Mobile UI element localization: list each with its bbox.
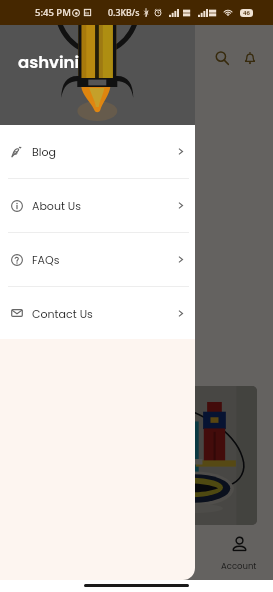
button[interactable]: Contact Us: [0, 287, 195, 339]
button[interactable]: Account: [205, 522, 273, 580]
staticText: Blog: [32, 144, 56, 159]
staticText: ashvini: [18, 51, 80, 74]
staticText: 5:45 PM: [35, 6, 71, 19]
staticText: 0.3KB/s: [108, 7, 140, 19]
button[interactable]: Notifications: [236, 44, 264, 72]
button[interactable]: Search: [208, 44, 236, 72]
staticText: Contact Us: [32, 306, 93, 321]
button[interactable]: About Us: [0, 179, 195, 232]
staticText: FAQs: [32, 252, 60, 267]
button[interactable]: Cart: [137, 522, 205, 580]
button[interactable]: Blog: [0, 125, 195, 178]
staticText: 46: [243, 9, 250, 17]
staticText: Account: [221, 560, 257, 572]
staticText: About Us: [32, 198, 82, 213]
button[interactable]: FAQs: [0, 233, 195, 286]
